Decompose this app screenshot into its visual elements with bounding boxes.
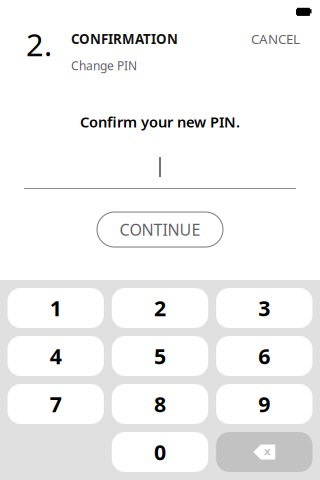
button[interactable]: 4 — [8, 336, 104, 376]
button[interactable]: 1 — [8, 288, 104, 328]
button[interactable]: 3 — [216, 288, 312, 328]
staticText: Confirm your new PIN. — [80, 112, 240, 131]
button[interactable]: Delete — [216, 432, 312, 472]
staticText: 5 — [154, 342, 166, 370]
staticText: Change PIN — [71, 58, 137, 74]
button[interactable]: CANCEL — [245, 25, 306, 53]
button[interactable]: 6 — [216, 336, 312, 376]
staticText: 7 — [50, 390, 62, 418]
button[interactable]: 7 — [8, 384, 104, 424]
staticText: 3 — [258, 294, 270, 322]
staticText: CONTINUE — [119, 219, 200, 240]
staticText: 6 — [258, 342, 270, 370]
button[interactable]: CONTINUE — [97, 212, 223, 247]
staticText: 0 — [154, 438, 166, 466]
button[interactable]: 0 — [112, 432, 208, 472]
staticText: 9 — [258, 390, 270, 418]
staticText: 4 — [50, 342, 62, 370]
button[interactable]: 2 — [112, 288, 208, 328]
button[interactable]: 8 — [112, 384, 208, 424]
staticText: CANCEL — [251, 30, 300, 48]
button[interactable]: 5 — [112, 336, 208, 376]
staticText: CONFIRMATION — [71, 30, 178, 48]
staticText: 2. — [26, 24, 52, 65]
button[interactable]: 9 — [216, 384, 312, 424]
staticText: 2 — [154, 294, 166, 322]
staticText: 1 — [50, 294, 62, 322]
staticText: 8 — [154, 390, 166, 418]
